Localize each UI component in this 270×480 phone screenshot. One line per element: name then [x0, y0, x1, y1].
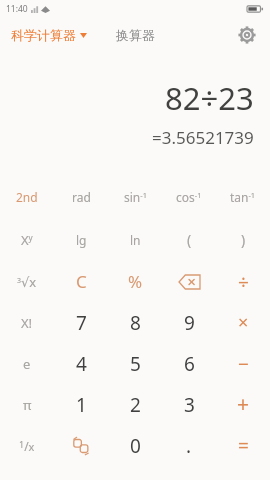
button[interactable]: Xy — [0, 218, 54, 261]
staticText: 5 — [130, 351, 141, 377]
staticText: =3.56521739 — [152, 126, 254, 149]
button[interactable]: 2 — [108, 384, 162, 425]
staticText: + — [237, 390, 250, 419]
staticText: 8 — [130, 310, 141, 336]
staticText: π — [23, 396, 32, 414]
staticText: 11:40 — [6, 3, 28, 15]
button[interactable]: rad — [54, 175, 108, 218]
button[interactable]: % — [108, 261, 162, 302]
staticText: ( — [187, 230, 192, 249]
staticText: = — [238, 433, 249, 459]
staticText: lg — [76, 232, 87, 248]
button[interactable]: lg — [54, 218, 108, 261]
button[interactable]: ( — [162, 218, 216, 261]
staticText: 0 — [130, 433, 141, 459]
staticText: 4 — [76, 351, 87, 377]
button[interactable]: 0 — [108, 425, 162, 466]
staticText: . — [186, 433, 192, 459]
staticText: e — [23, 355, 31, 373]
staticText: ÷ — [238, 269, 249, 295]
button[interactable]: ln — [108, 218, 162, 261]
button[interactable]: 科学计算器 — [11, 23, 87, 47]
staticText: 2nd — [16, 189, 38, 205]
button[interactable]: ) — [216, 218, 270, 261]
staticText: ) — [241, 230, 246, 249]
staticText: 3 — [184, 392, 195, 418]
button[interactable]: 4 — [54, 343, 108, 384]
button[interactable]: cos-1 — [162, 175, 216, 218]
button[interactable]: 1 — [54, 384, 108, 425]
button[interactable]: . — [162, 425, 216, 466]
button[interactable]: X! — [0, 302, 54, 343]
button[interactable]: − — [216, 343, 270, 384]
button[interactable]: 6 — [162, 343, 216, 384]
button[interactable]: 8 — [108, 302, 162, 343]
staticText: ln — [130, 232, 141, 248]
staticText: % — [128, 270, 143, 293]
button[interactable]: = — [216, 425, 270, 466]
staticText: 3√x — [17, 273, 37, 291]
button[interactable]: 换算器 — [112, 21, 159, 49]
staticText: tan-1 — [230, 189, 256, 205]
staticText: rad — [72, 189, 91, 205]
button[interactable]: × — [216, 302, 270, 343]
button[interactable]: sin-1 — [108, 175, 162, 218]
button[interactable]: 7 — [54, 302, 108, 343]
button[interactable]: Backspace — [162, 261, 216, 302]
staticText: 6 — [184, 351, 195, 377]
staticText: 科学计算器 — [11, 27, 76, 43]
staticText: 9 — [184, 310, 195, 336]
staticText: 1 — [76, 392, 87, 418]
button[interactable]: 5 — [108, 343, 162, 384]
staticText: sin-1 — [124, 189, 147, 205]
button[interactable]: 3 — [162, 384, 216, 425]
staticText: 2 — [130, 392, 141, 418]
staticText: 7 — [76, 310, 87, 336]
button[interactable]: 2nd — [0, 175, 54, 218]
button[interactable]: Switch keypad — [54, 425, 108, 466]
button[interactable]: tan-1 — [216, 175, 270, 218]
staticText: 82÷23 — [165, 77, 254, 119]
button[interactable]: + — [216, 384, 270, 425]
staticText: × — [238, 310, 249, 335]
staticText: 换算器 — [116, 27, 155, 43]
button[interactable]: Settings — [234, 22, 260, 48]
button[interactable]: ÷ — [216, 261, 270, 302]
button[interactable]: 9 — [162, 302, 216, 343]
staticText: X! — [21, 314, 33, 332]
button[interactable]: Reciprocal — [0, 425, 54, 466]
button[interactable]: e — [0, 343, 54, 384]
button[interactable]: C — [54, 261, 108, 302]
staticText: − — [238, 351, 249, 377]
staticText: cos-1 — [176, 189, 202, 205]
button[interactable]: Cube root — [0, 261, 54, 302]
staticText: Xy — [21, 231, 33, 249]
button[interactable]: π — [0, 384, 54, 425]
staticText: 1/x — [19, 438, 35, 454]
staticText: C — [76, 270, 87, 293]
